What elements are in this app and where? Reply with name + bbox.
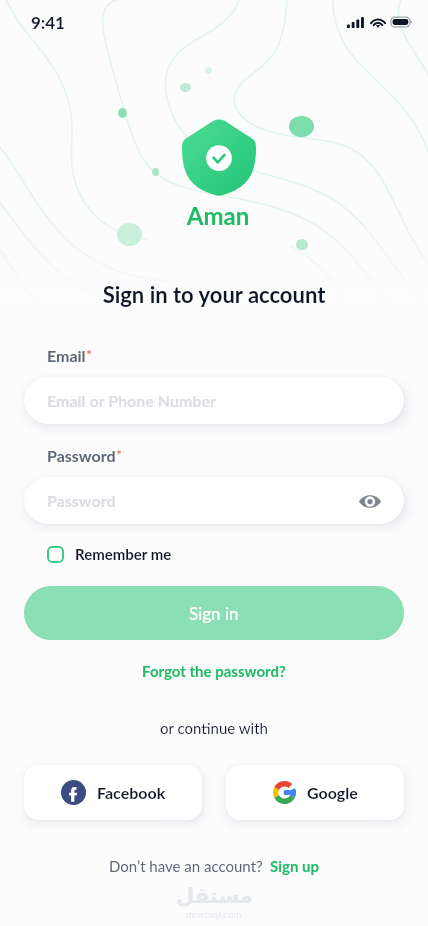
staticText: Facebook (97, 783, 166, 802)
button[interactable]: Forgot the password? (0, 662, 428, 680)
staticText: Google (307, 783, 358, 802)
button[interactable]: Sign in (24, 586, 404, 640)
staticText: Sign in to your account (0, 281, 428, 307)
staticText: Password (47, 446, 116, 465)
button[interactable]: Google (226, 765, 404, 820)
button[interactable]: Remember me (47, 545, 172, 563)
button[interactable]: Show password (355, 486, 385, 516)
staticText: or continue with (0, 719, 428, 737)
staticText: 9:41 (31, 12, 65, 32)
staticText: Email or Phone Number (47, 391, 216, 410)
button[interactable]: Facebook (24, 765, 202, 820)
staticText: مستقل (176, 884, 253, 908)
staticText: Password (47, 491, 116, 510)
staticText: Don’t have an account? (109, 857, 263, 875)
staticText: Remember me (75, 545, 172, 563)
staticText: Sign in (189, 603, 239, 623)
button[interactable]: Sign up (270, 857, 320, 875)
button[interactable]: Password (24, 477, 404, 524)
staticText: * (86, 346, 92, 363)
staticText: * (116, 446, 122, 463)
staticText: Aman (4, 201, 428, 230)
button[interactable]: Email or Phone Number (24, 377, 404, 424)
staticText: Email (47, 346, 86, 365)
staticText: mostaql.com (186, 908, 242, 920)
